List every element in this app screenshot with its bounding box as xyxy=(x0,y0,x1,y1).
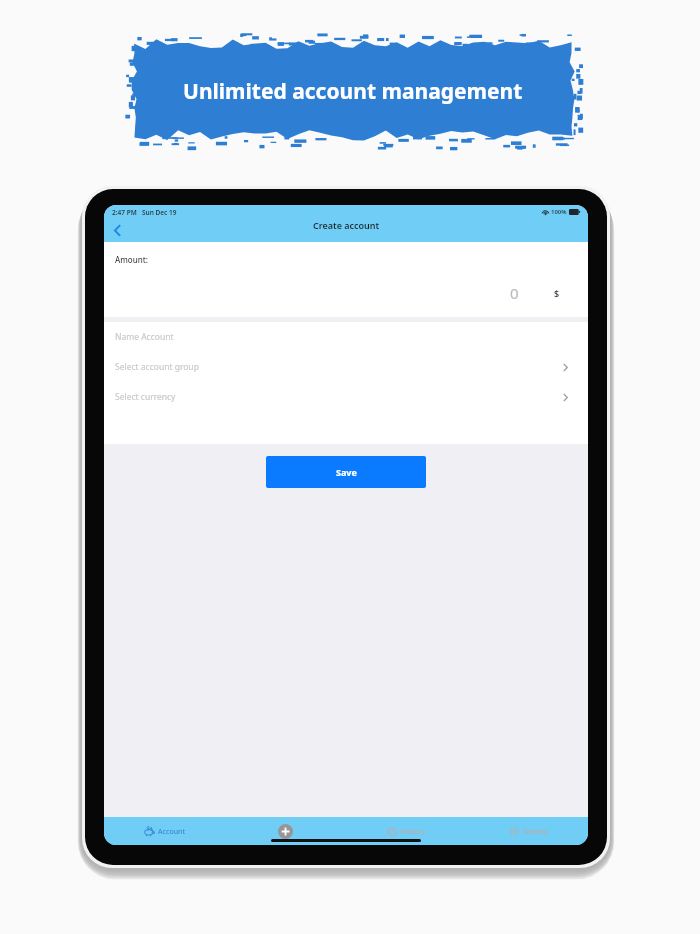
button[interactable]: Back xyxy=(104,219,130,242)
staticText: Select account group xyxy=(115,361,199,373)
staticText: History xyxy=(401,827,426,837)
staticText: Sun Dec 19 xyxy=(142,208,177,217)
staticText: Setting xyxy=(523,827,547,837)
staticText: Name Account xyxy=(115,331,174,343)
button[interactable]: Name Account xyxy=(104,322,588,352)
staticText: Save xyxy=(336,466,357,478)
button[interactable]: Account xyxy=(104,817,225,845)
staticText: Select currency xyxy=(115,391,176,403)
staticText: Create account xyxy=(313,219,380,231)
button[interactable]: Add xyxy=(225,817,346,845)
button[interactable]: Select currency xyxy=(104,382,588,412)
staticText: 2:47 PM xyxy=(112,208,137,217)
button[interactable]: Save xyxy=(266,456,426,488)
button[interactable]: History xyxy=(346,817,467,845)
staticText: $ xyxy=(554,287,560,299)
staticText: Account xyxy=(158,827,186,837)
button[interactable]: Setting xyxy=(467,817,588,845)
staticText: Amount: xyxy=(115,254,148,265)
staticText: Unlimited account management xyxy=(183,77,523,106)
button[interactable]: Select account group xyxy=(104,352,588,382)
staticText: 0 xyxy=(510,283,519,303)
staticText: 100% xyxy=(551,208,567,216)
